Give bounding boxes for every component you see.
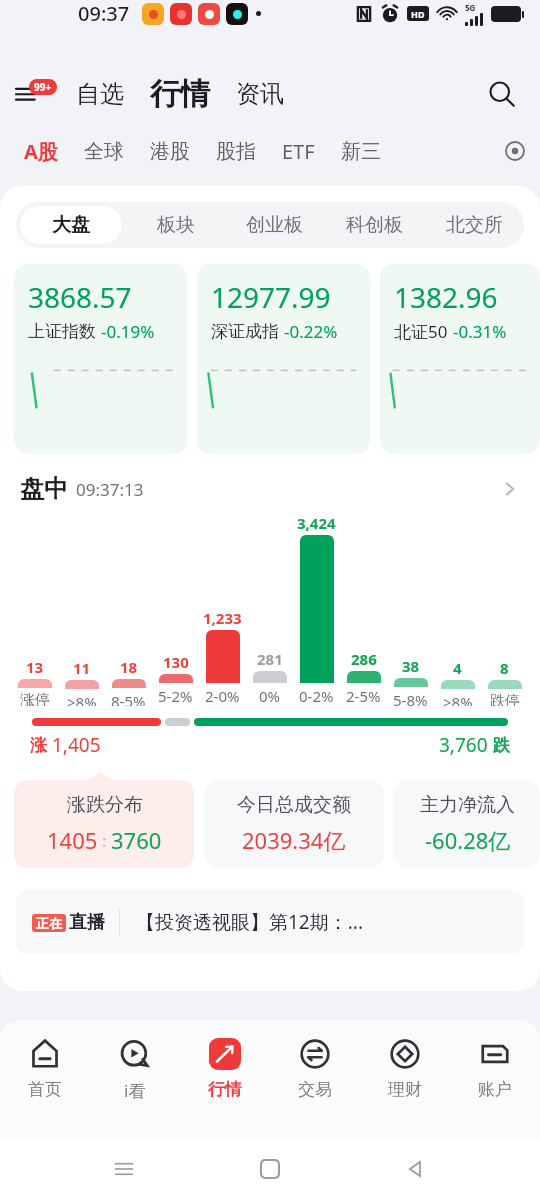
staticText: 科创板 [346,213,403,237]
staticText: -0.19% [101,320,155,343]
staticText: 跌停 [490,692,520,706]
button[interactable]: 行情 [180,1036,270,1138]
button[interactable]: 主力净流入 [394,780,540,868]
staticText: 0% [259,686,281,706]
staticText: 1,405 [52,732,101,758]
button[interactable]: Menu [16,73,58,115]
button[interactable]: 3868.57 [14,264,187,454]
staticText: 1382.96 [394,278,498,316]
staticText: 板块 [157,213,195,237]
staticText: 2039.34亿 [242,825,346,855]
staticText: 【投资透视眼】第12期：... [136,909,364,935]
staticText: 3,424 [297,513,336,533]
staticText: 账户 [478,1079,512,1100]
staticText: 1405 [47,825,98,855]
staticText: 2-5% [346,686,381,706]
button[interactable]: ETF [276,132,321,171]
staticText: >8% [443,692,473,706]
staticText: 直播 [69,911,105,934]
staticText: 涨 [30,735,47,756]
button[interactable]: 北交所 [424,202,524,248]
staticText: ETF [282,138,315,165]
staticText: 大盘 [52,213,90,237]
staticText: 北证50 [394,320,448,343]
staticText: 09:37 [78,0,130,27]
button[interactable]: 港股 [144,133,196,170]
staticText: 09:37:13 [76,478,144,501]
staticText: 281 [257,649,283,669]
staticText: 11 [73,658,91,678]
staticText: 3760 [111,825,162,855]
button[interactable]: 新三 [335,133,387,170]
staticText: 130 [163,652,189,672]
staticText: 行情 [208,1079,242,1100]
button[interactable]: Recents [102,1147,146,1191]
button[interactable]: Back [394,1147,438,1191]
staticText: 5-2% [158,686,193,706]
staticText: 创业板 [246,213,303,237]
button[interactable]: 盘中 [20,472,520,506]
button[interactable]: 首页 [0,1036,90,1138]
button[interactable]: 板块 [126,202,225,248]
staticText: 盘中 [20,474,68,504]
staticText: 3868.57 [28,278,132,316]
staticText: 3,760 [439,732,488,758]
staticText: 5G [465,2,476,13]
staticText: 交易 [298,1079,332,1100]
staticText: >8% [67,692,97,706]
staticText: 全球 [84,139,124,164]
button[interactable]: Customize [498,134,532,168]
staticText: 5-8% [393,690,428,706]
staticText: 深证成指 [211,321,279,342]
staticText: : [102,829,107,852]
staticText: 新三 [341,139,381,164]
button[interactable]: 理财 [360,1036,450,1138]
staticText: -60.28亿 [425,825,511,855]
staticText: 1,233 [203,608,242,628]
button[interactable]: 行情 [146,71,214,117]
staticText: -0.22% [284,320,338,343]
button[interactable]: 12977.99 [197,264,370,454]
staticText: 今日总成交额 [237,793,351,817]
staticText: 北交所 [446,213,503,237]
button[interactable]: 大盘 [20,206,122,244]
button[interactable]: 科创板 [324,202,424,248]
button[interactable]: 1382.96 [380,264,540,454]
button[interactable]: 全球 [78,133,130,170]
staticText: 12977.99 [211,278,331,316]
staticText: 首页 [28,1079,62,1100]
staticText: 38 [402,656,420,676]
button[interactable]: Search [482,74,522,114]
button[interactable]: 资讯 [232,73,288,115]
staticText: 资讯 [236,79,284,109]
staticText: i看 [124,1079,146,1102]
staticText: 股指 [216,139,256,164]
button[interactable]: 账户 [450,1036,540,1138]
button[interactable]: A股 [18,132,64,171]
button[interactable]: 自选 [72,73,128,115]
button[interactable]: i看 [90,1036,180,1138]
staticText: 港股 [150,139,190,164]
staticText: 99+ [34,80,52,94]
staticText: A股 [24,138,58,165]
staticText: HD [411,8,425,20]
staticText: 正在 [36,915,62,931]
staticText: 2-0% [205,686,240,706]
button[interactable]: 创业板 [225,202,324,248]
staticText: 涨停 [20,691,50,706]
button[interactable]: 正在 [16,890,524,954]
staticText: 跌 [493,735,510,756]
button[interactable]: Home [248,1147,292,1191]
staticText: 0-2% [299,686,334,706]
staticText: 自选 [76,79,124,109]
button[interactable]: 交易 [270,1036,360,1138]
staticText: 18 [120,657,138,677]
staticText: 13 [26,657,44,677]
button[interactable]: 今日总成交额 [204,780,384,868]
button[interactable]: 股指 [210,133,262,170]
button[interactable]: 涨跌分布 [14,780,194,868]
staticText: 行情 [150,75,210,113]
staticText: 上证指数 [28,321,96,342]
staticText: 主力净流入 [420,793,515,817]
staticText: 286 [351,649,377,669]
